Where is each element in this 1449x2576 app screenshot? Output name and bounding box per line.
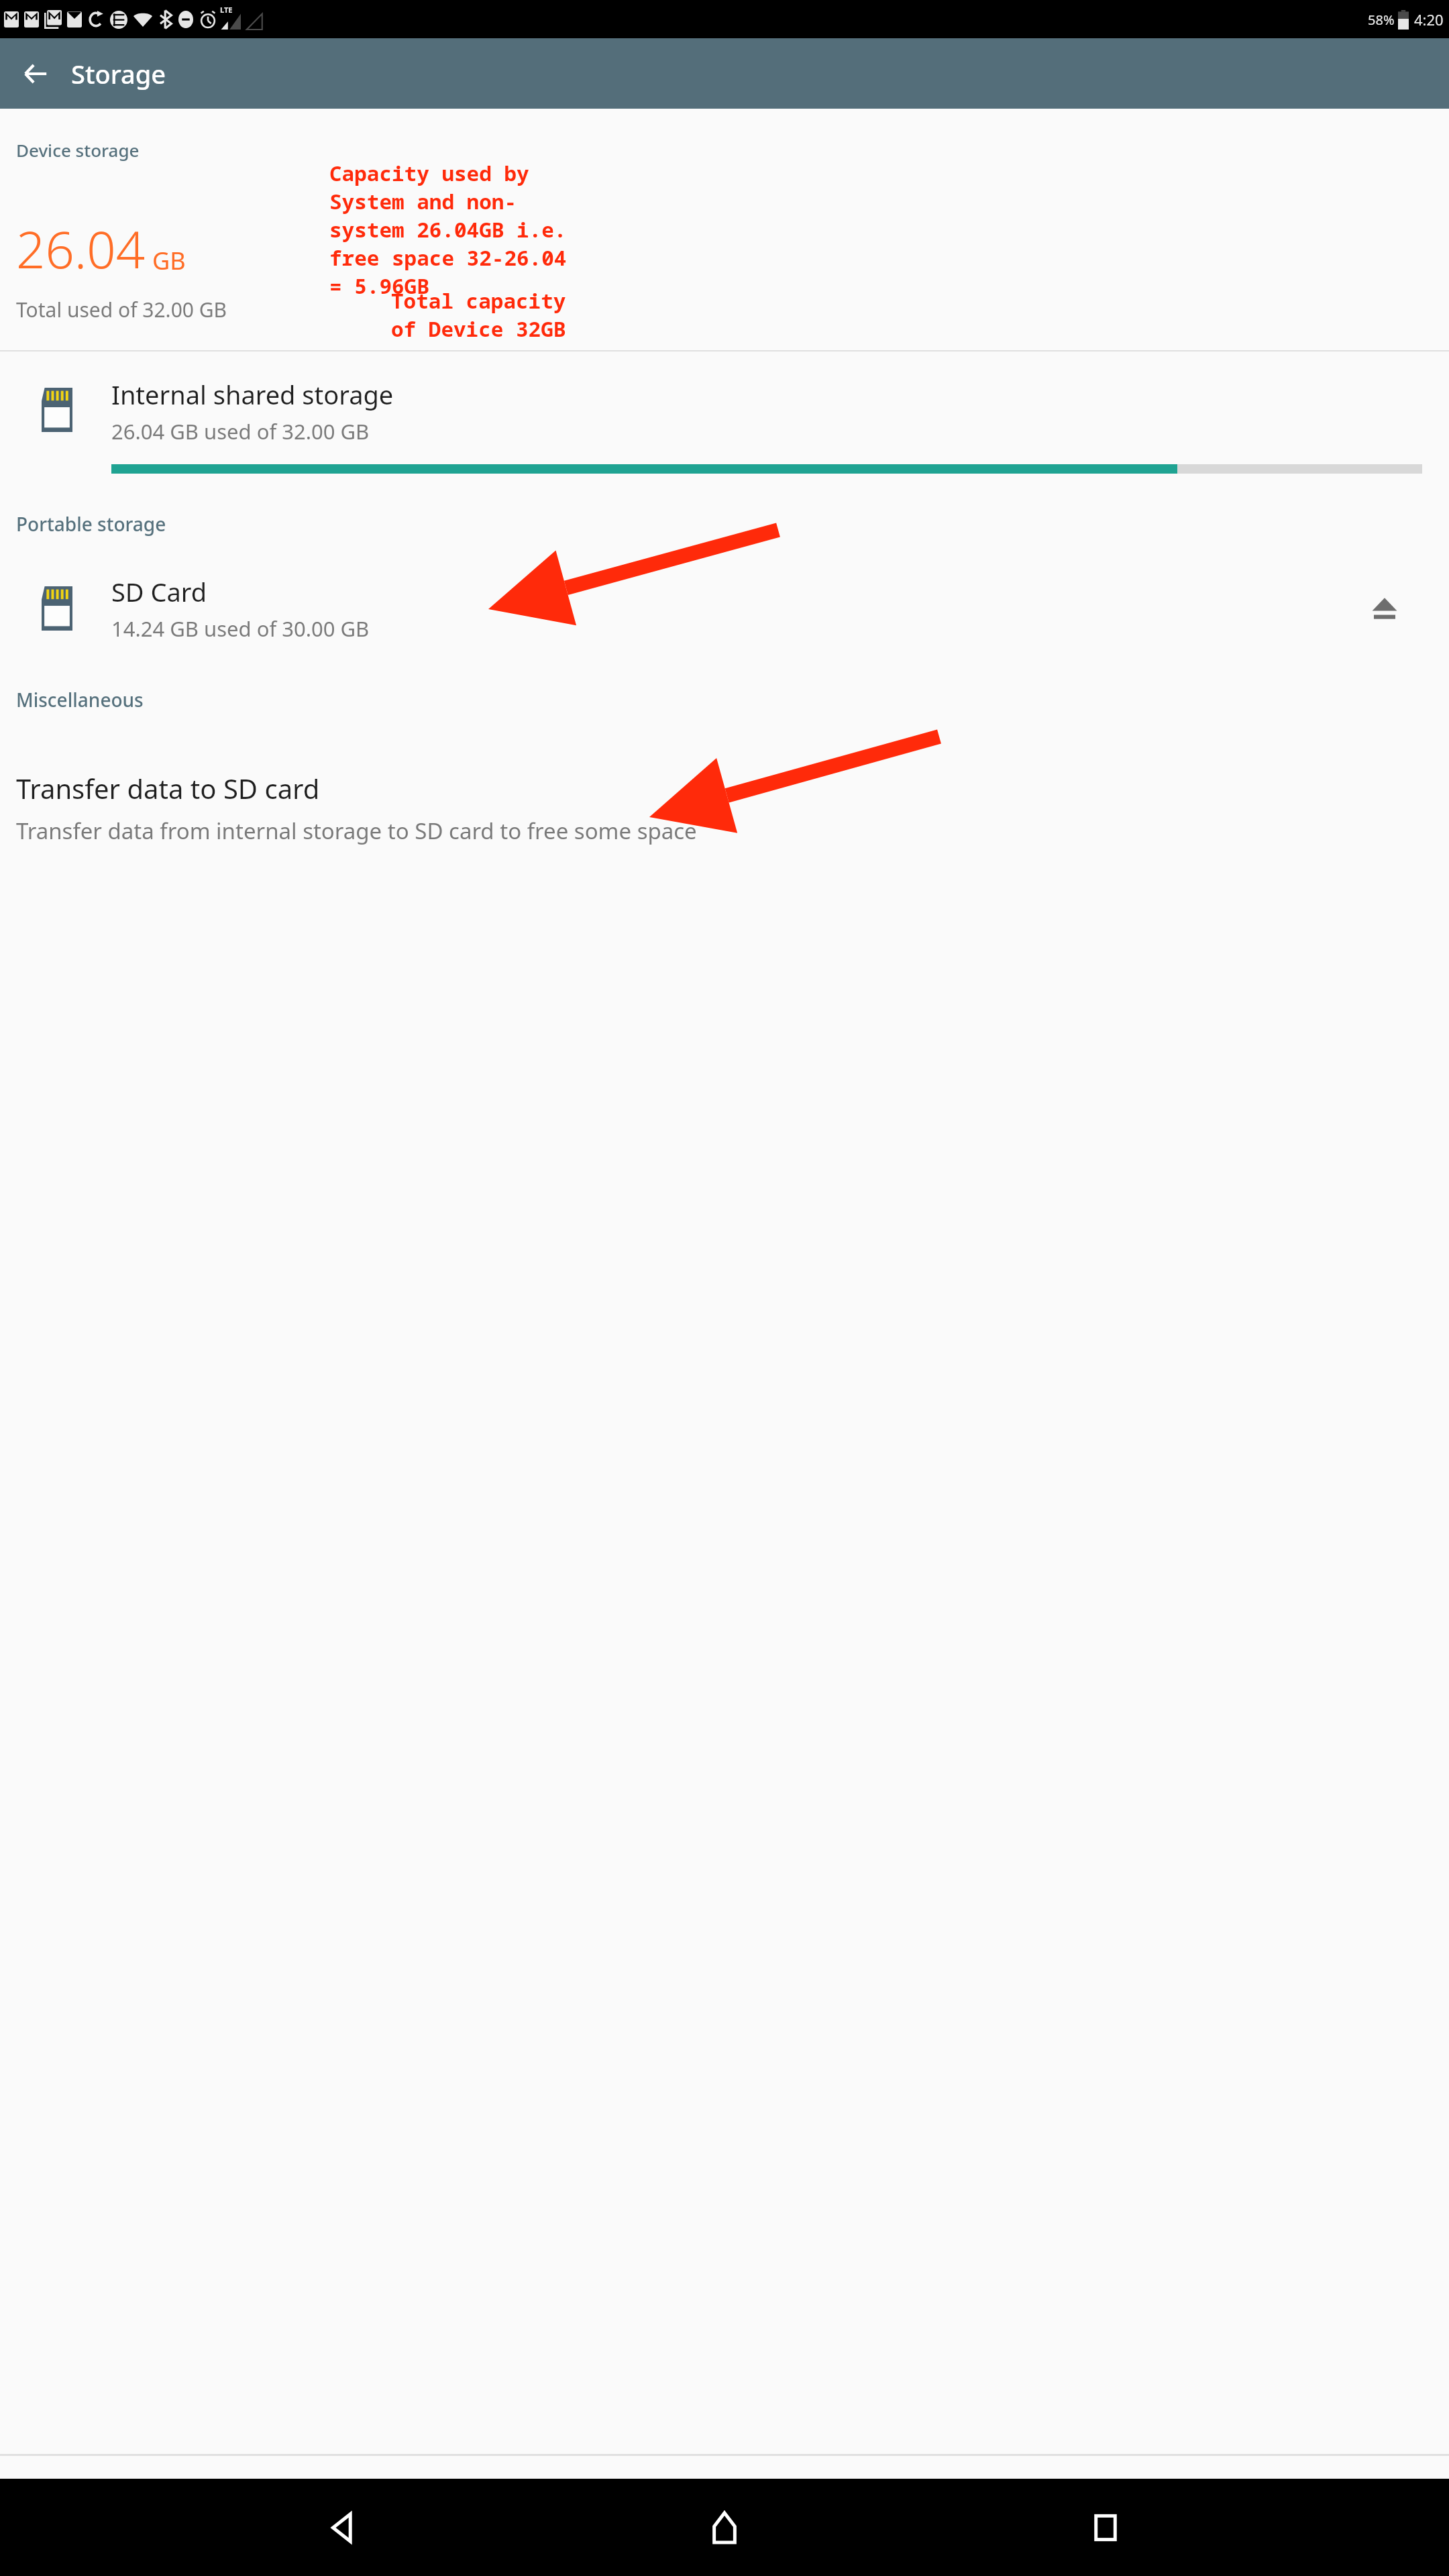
- staticText: Portable storage: [16, 511, 166, 537]
- staticText: 26.04 GB used of 32.00 GB: [111, 417, 370, 445]
- staticText: SD Card: [111, 574, 207, 609]
- staticText: 4:20: [1414, 9, 1444, 30]
- staticText: LTE: [220, 5, 233, 15]
- button[interactable]: Transfer data to SD card: [0, 770, 1449, 846]
- staticText: Miscellaneous: [16, 687, 144, 712]
- staticText: 26.04: [16, 214, 146, 284]
- button[interactable]: Back: [307, 2491, 381, 2565]
- staticText: Device storage: [16, 138, 140, 162]
- button[interactable]: SD Card: [0, 574, 1449, 643]
- button[interactable]: Internal shared storage: [0, 352, 1449, 480]
- staticText: System and non-: [329, 187, 517, 215]
- staticText: = 5.96GB: [329, 272, 429, 300]
- button[interactable]: Back: [15, 53, 56, 95]
- staticText: free space 32-26.04: [329, 244, 567, 272]
- staticText: Storage: [71, 56, 166, 91]
- staticText: Transfer data to SD card: [16, 770, 320, 806]
- staticText: 14.24 GB used of 30.00 GB: [111, 614, 370, 643]
- staticText: 58%: [1368, 11, 1395, 29]
- button[interactable]: Eject SD card: [1358, 582, 1411, 635]
- button[interactable]: Home: [688, 2491, 761, 2565]
- staticText: Transfer data from internal storage to S…: [16, 816, 697, 846]
- staticText: Internal shared storage: [111, 377, 394, 412]
- staticText: Capacity used by: [329, 159, 529, 187]
- staticText: Total capacity: [391, 286, 566, 315]
- staticText: system 26.04GB i.e.: [329, 215, 567, 244]
- button[interactable]: Recent apps: [1069, 2491, 1142, 2565]
- staticText: Total used of 32.00 GB: [16, 296, 227, 323]
- staticText: GB: [152, 244, 186, 277]
- staticText: of Device 32GB: [391, 315, 566, 343]
